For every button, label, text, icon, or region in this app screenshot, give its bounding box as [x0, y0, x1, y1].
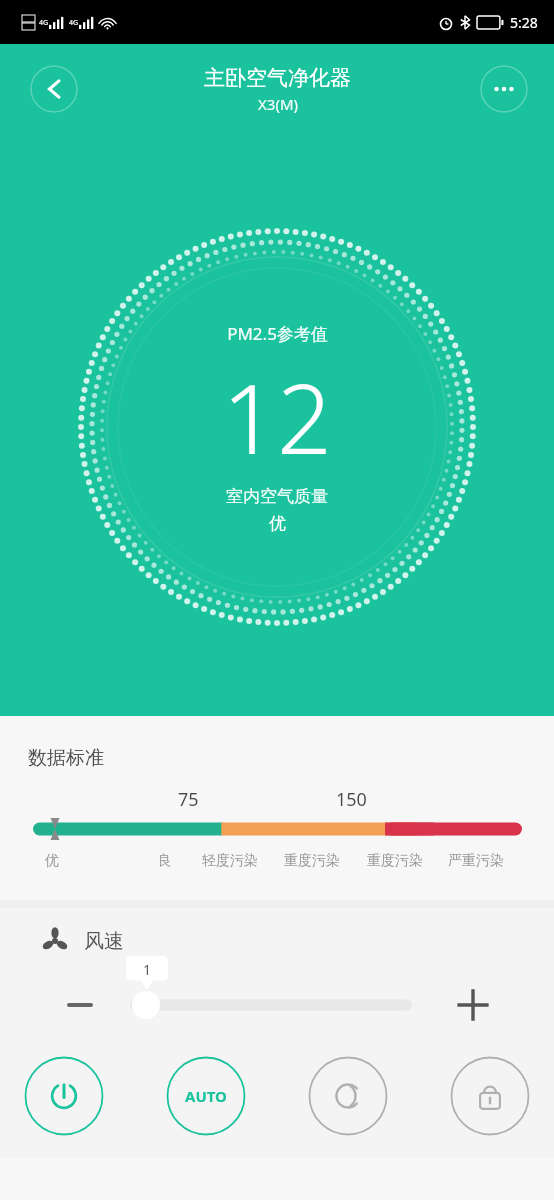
staticText: 150 [336, 787, 367, 812]
staticText: 轻度污染 [202, 852, 258, 870]
button[interactable]: Power [24, 1056, 104, 1136]
staticText: 1 [143, 960, 152, 979]
button[interactable]: Increase fan speed [450, 982, 496, 1028]
button[interactable]: Child lock [450, 1056, 530, 1136]
staticText: PM2.5参考值 [227, 322, 328, 345]
staticText: AUTO [185, 1086, 227, 1106]
staticText: X3(M) [258, 94, 298, 114]
button[interactable] [130, 985, 412, 1025]
button[interactable]: More options [480, 65, 528, 113]
staticText: 4G [69, 18, 79, 28]
staticText: 5:28 [510, 13, 538, 32]
button[interactable]: Auto mode [166, 1056, 246, 1136]
staticText: 优 [269, 513, 286, 534]
button[interactable]: Decrease fan speed [58, 983, 102, 1027]
button[interactable]: Night mode [308, 1056, 388, 1136]
staticText: 数据标准 [28, 746, 104, 770]
staticText: 75 [178, 787, 199, 812]
staticText: 良 [158, 852, 172, 870]
staticText: 4G [39, 18, 49, 28]
staticText: 重度污染 [367, 852, 423, 870]
staticText: 室内空气质量 [226, 486, 328, 507]
staticText: 优 [45, 852, 59, 870]
staticText: 主卧空气净化器 [204, 65, 351, 91]
staticText: 12 [222, 351, 332, 482]
button[interactable]: Back [30, 65, 78, 113]
staticText: 严重污染 [448, 852, 504, 870]
staticText: 风速 [84, 929, 124, 954]
staticText: 重度污染 [284, 852, 340, 870]
